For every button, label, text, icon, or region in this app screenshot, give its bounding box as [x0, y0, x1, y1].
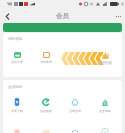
staticText: 云端空间 — [69, 109, 81, 113]
staticText: 企业服务 — [99, 109, 111, 113]
button[interactable]: 企业服务 — [93, 98, 117, 113]
button[interactable]: 帮助中心 — [93, 130, 117, 133]
staticText: 会员服务 — [8, 85, 23, 90]
button[interactable]: 专属福利 — [34, 130, 58, 133]
staticText: 立即开通 — [98, 61, 112, 65]
button[interactable]: More options — [111, 9, 125, 23]
button[interactable]: 在线客服 — [63, 130, 87, 133]
button[interactable]: 云端空间 — [63, 98, 87, 113]
staticText: 专享下载 — [11, 109, 23, 113]
button[interactable] — [3, 23, 122, 32]
button[interactable]: Back — [0, 9, 14, 23]
staticText: 会员加速 — [40, 109, 52, 113]
staticText: 会员 — [56, 12, 69, 20]
staticText: 会员卡券 — [11, 60, 23, 64]
staticText: 我的权益 — [8, 37, 23, 42]
button[interactable]: 专属客服 — [35, 52, 57, 64]
button[interactable]: 会员加速 — [34, 98, 58, 113]
staticText: 专属客服 — [40, 60, 52, 64]
button[interactable]: 专享下载 — [5, 98, 29, 113]
button[interactable]: 会员卡券 — [6, 52, 28, 64]
button[interactable]: 我的账单 — [5, 130, 29, 133]
